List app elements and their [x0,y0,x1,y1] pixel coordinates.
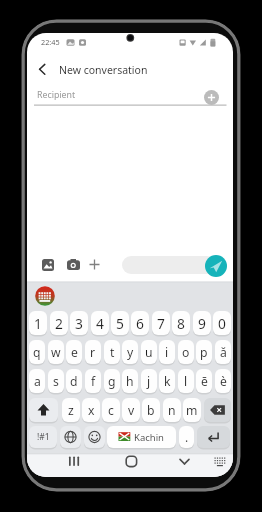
button[interactable]: !#1 [29,426,57,448]
staticText: k [164,373,171,390]
staticText: b [147,402,155,419]
button[interactable] [204,398,231,422]
staticText: j [147,373,151,390]
button[interactable]: n [163,398,181,422]
button[interactable]: v [122,398,140,422]
button[interactable] [125,455,138,468]
button[interactable] [29,398,58,422]
staticText: 9 [198,314,206,333]
staticText: New conversation [59,63,148,77]
button[interactable]: 7 [152,311,170,335]
button[interactable]: s [48,369,64,393]
button[interactable]: c [102,398,120,422]
button[interactable]: y [122,340,138,364]
button[interactable]: 6 [131,311,149,335]
staticText: c [108,402,114,419]
staticText: t [110,344,115,361]
button[interactable] [89,259,100,270]
button[interactable]: 0 [213,311,231,335]
button[interactable] [67,259,80,270]
button[interactable] [60,426,81,448]
button[interactable]: m [183,398,201,422]
staticText: a [34,373,41,390]
button[interactable]: 5 [111,311,129,335]
button[interactable] [35,286,55,306]
button[interactable]: 3 [70,311,88,335]
staticText: f [91,373,96,390]
button[interactable]: ē [196,369,212,393]
staticText: z [68,402,74,419]
staticText: è [220,373,227,390]
staticText: v [128,402,135,419]
button[interactable]: i [159,340,175,364]
button[interactable]: è [215,369,231,393]
staticText: r [90,344,96,361]
staticText: s [53,373,59,390]
staticText: i [165,344,169,361]
staticText: 6 [136,314,144,333]
button[interactable] [122,256,216,274]
staticText: n [168,402,176,419]
button[interactable]: 1 [29,311,47,335]
staticText: . [185,429,189,445]
staticText: !#1 [37,431,50,443]
staticText: 7 [157,314,165,333]
button[interactable]: 9 [193,311,211,335]
staticText: 4 [96,314,104,333]
button[interactable]: 2 [50,311,68,335]
button[interactable]: . [179,426,194,448]
staticText: h [126,373,134,390]
button[interactable]: z [62,398,80,422]
staticText: y [127,344,134,361]
button[interactable]: j [141,369,157,393]
button[interactable]: u [141,340,157,364]
staticText: g [108,373,116,390]
staticText: 0 [218,314,226,333]
staticText: e [71,344,78,361]
button[interactable] [197,426,230,448]
button[interactable]: d [66,369,82,393]
button[interactable] [84,426,105,448]
staticText: 8 [177,314,185,333]
staticText: Kachin [134,431,164,444]
button[interactable]: q [29,340,45,364]
staticText: m [186,402,198,419]
button[interactable]: g [104,369,120,393]
staticText: u [145,344,153,361]
button[interactable]: a [29,369,45,393]
button[interactable]: p [196,340,212,364]
button[interactable] [204,90,219,105]
button[interactable]: t [104,340,120,364]
staticText: 2 [55,314,63,333]
button[interactable]: Kachin [107,426,176,448]
button[interactable]: r [85,340,101,364]
staticText: d [70,373,78,390]
staticText: 5 [116,314,124,333]
button[interactable]: o [178,340,194,364]
button[interactable]: e [66,340,82,364]
staticText: Recipient [37,89,76,101]
button[interactable] [178,455,191,468]
button[interactable]: b [142,398,160,422]
button[interactable]: h [122,369,138,393]
button[interactable]: l [178,369,194,393]
staticText: o [182,344,190,361]
staticText: q [33,344,41,361]
button[interactable] [205,255,227,277]
button[interactable]: w [48,340,64,364]
button[interactable] [213,456,227,467]
button[interactable]: 8 [172,311,190,335]
staticText: 3 [75,314,83,333]
button[interactable]: x [82,398,100,422]
staticText: w [51,344,61,361]
button[interactable]: k [159,369,175,393]
button[interactable]: 4 [91,311,109,335]
button[interactable] [35,61,49,77]
staticText: 22:45 [41,37,60,47]
button[interactable]: ă [215,340,231,364]
button[interactable] [42,259,54,271]
staticText: x [88,402,95,419]
button[interactable]: f [85,369,101,393]
staticText: l [184,373,188,390]
button[interactable] [68,455,81,468]
